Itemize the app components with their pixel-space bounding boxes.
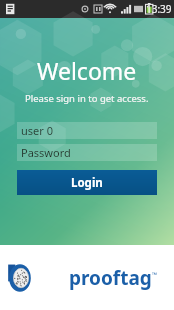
button[interactable]: user 0 [17, 122, 157, 139]
staticText: Login [71, 175, 103, 191]
staticText: user 0 [21, 123, 53, 138]
button[interactable]: Login [17, 170, 157, 195]
staticText: ™ [152, 270, 158, 279]
staticText: prooftag [69, 265, 152, 291]
staticText: Welcome [37, 55, 137, 86]
button[interactable]: Password [17, 144, 157, 161]
staticText: 13:39 [146, 2, 172, 16]
other: Prooftag logo [0, 257, 174, 299]
staticText: Password [21, 145, 71, 160]
staticText: Please sign in to get access. [25, 92, 149, 105]
